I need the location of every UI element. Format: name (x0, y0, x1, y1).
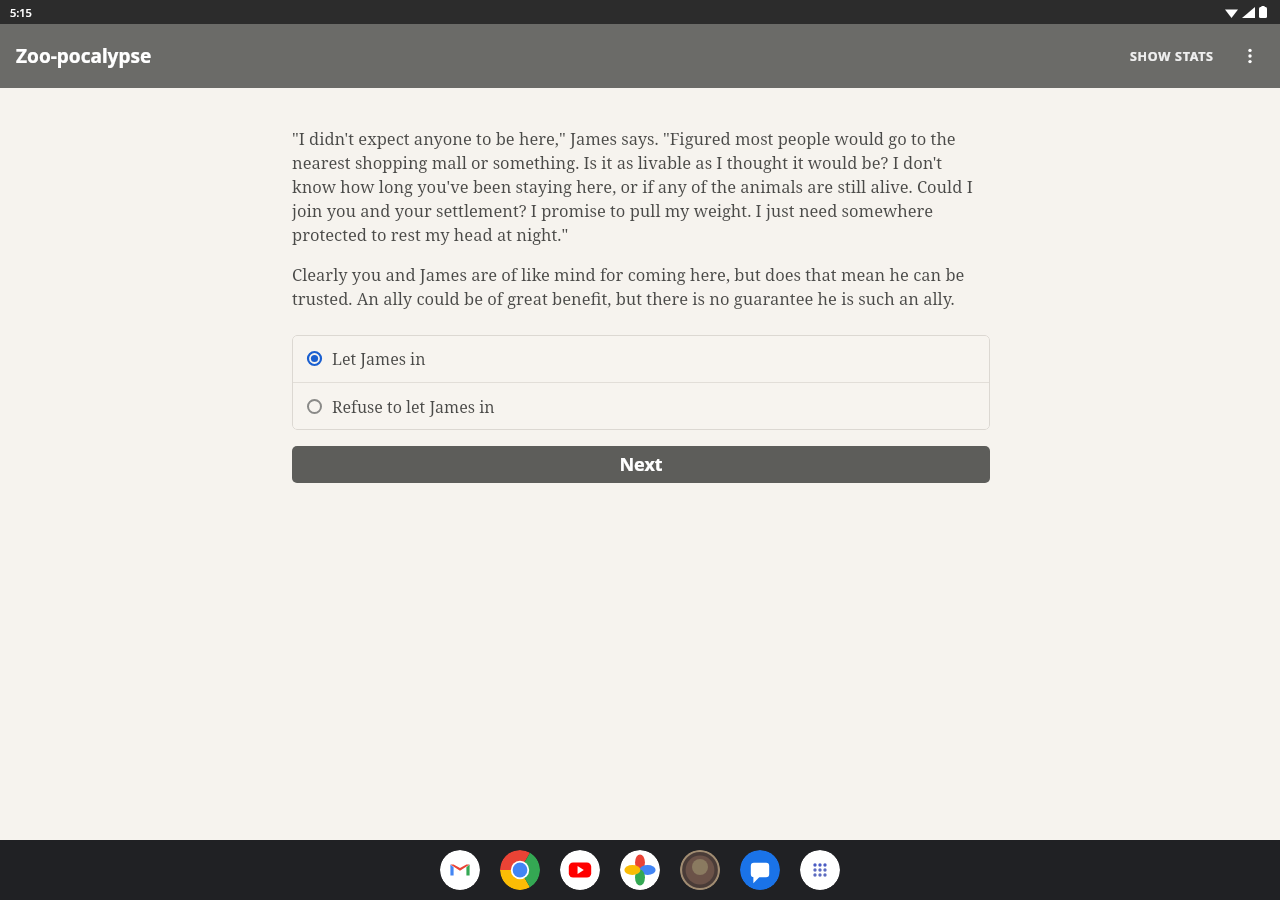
button[interactable]: Photos (620, 850, 660, 890)
staticText: SHOW STATS (1130, 48, 1214, 65)
button[interactable]: All apps (800, 850, 840, 890)
button[interactable]: SHOW STATS (1118, 34, 1226, 79)
button[interactable]: Refuse to let James in (292, 383, 990, 430)
button[interactable]: More options (1226, 32, 1274, 80)
button[interactable]: Let James in (292, 335, 990, 382)
staticText: Next (619, 452, 663, 477)
button[interactable]: Next (292, 446, 990, 483)
button[interactable]: Gmail (440, 850, 480, 890)
staticText: 5:15 (10, 5, 32, 20)
staticText: Zoo-pocalypse (16, 43, 152, 69)
button[interactable]: Messages (740, 850, 780, 890)
staticText: Clearly you and James are of like mind f… (292, 263, 990, 310)
button[interactable]: Chrome (500, 850, 540, 890)
staticText: "I didn't expect anyone to be here," Jam… (292, 127, 990, 246)
button[interactable]: Gallery (680, 850, 720, 890)
button[interactable]: YouTube (560, 850, 600, 890)
staticText: Let James in (332, 348, 426, 370)
staticText: Refuse to let James in (332, 396, 495, 418)
